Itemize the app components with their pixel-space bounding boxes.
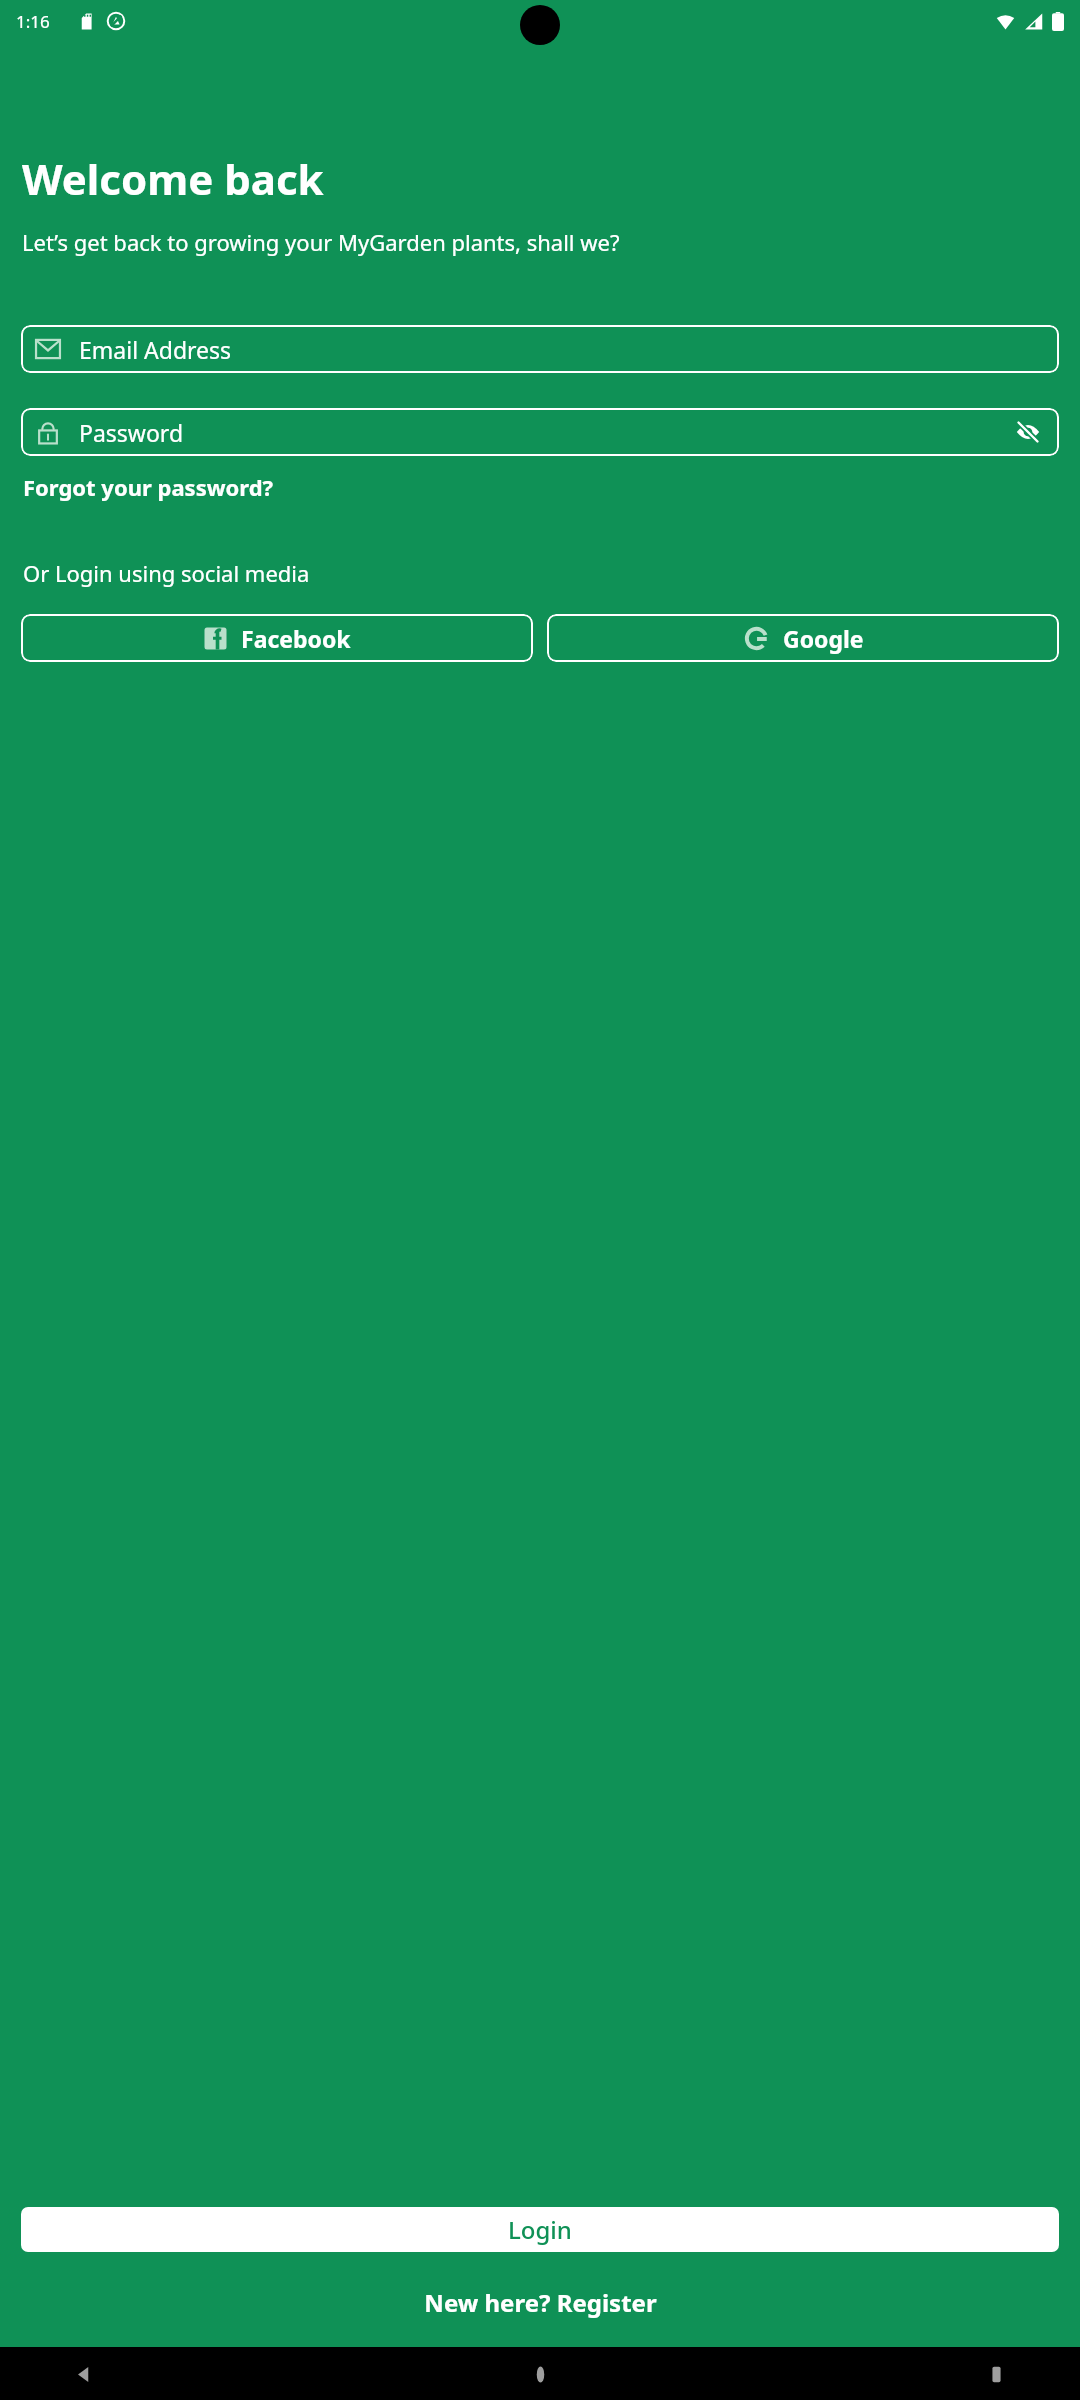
- staticText: Let’s get back to growing your MyGarden …: [22, 227, 852, 257]
- button[interactable]: Recent apps: [974, 2352, 1018, 2396]
- button[interactable]: Toggle password visibility: [1011, 415, 1045, 449]
- staticText: Or Login using social media: [23, 558, 310, 588]
- staticText: New here? Register: [424, 2286, 657, 2319]
- button[interactable]: Login: [21, 2207, 1059, 2252]
- button[interactable]: New here? Register: [21, 2280, 1059, 2325]
- staticText: Google: [783, 623, 864, 654]
- button[interactable]: Back: [62, 2352, 106, 2396]
- button[interactable]: Home: [518, 2352, 562, 2396]
- staticText: Welcome back: [22, 150, 324, 207]
- button[interactable]: Facebook: [21, 614, 533, 662]
- button[interactable]: Email Address: [21, 325, 1059, 373]
- staticText: Login: [508, 2213, 572, 2246]
- staticText: Email Address: [79, 334, 1045, 365]
- staticText: Password: [79, 417, 1011, 448]
- button[interactable]: Forgot your password?: [21, 468, 276, 506]
- staticText: Forgot your password?: [23, 472, 274, 502]
- staticText: 1:16: [16, 10, 50, 33]
- button[interactable]: Google: [547, 614, 1059, 662]
- staticText: Facebook: [241, 623, 351, 654]
- button[interactable]: Password: [21, 408, 1059, 456]
